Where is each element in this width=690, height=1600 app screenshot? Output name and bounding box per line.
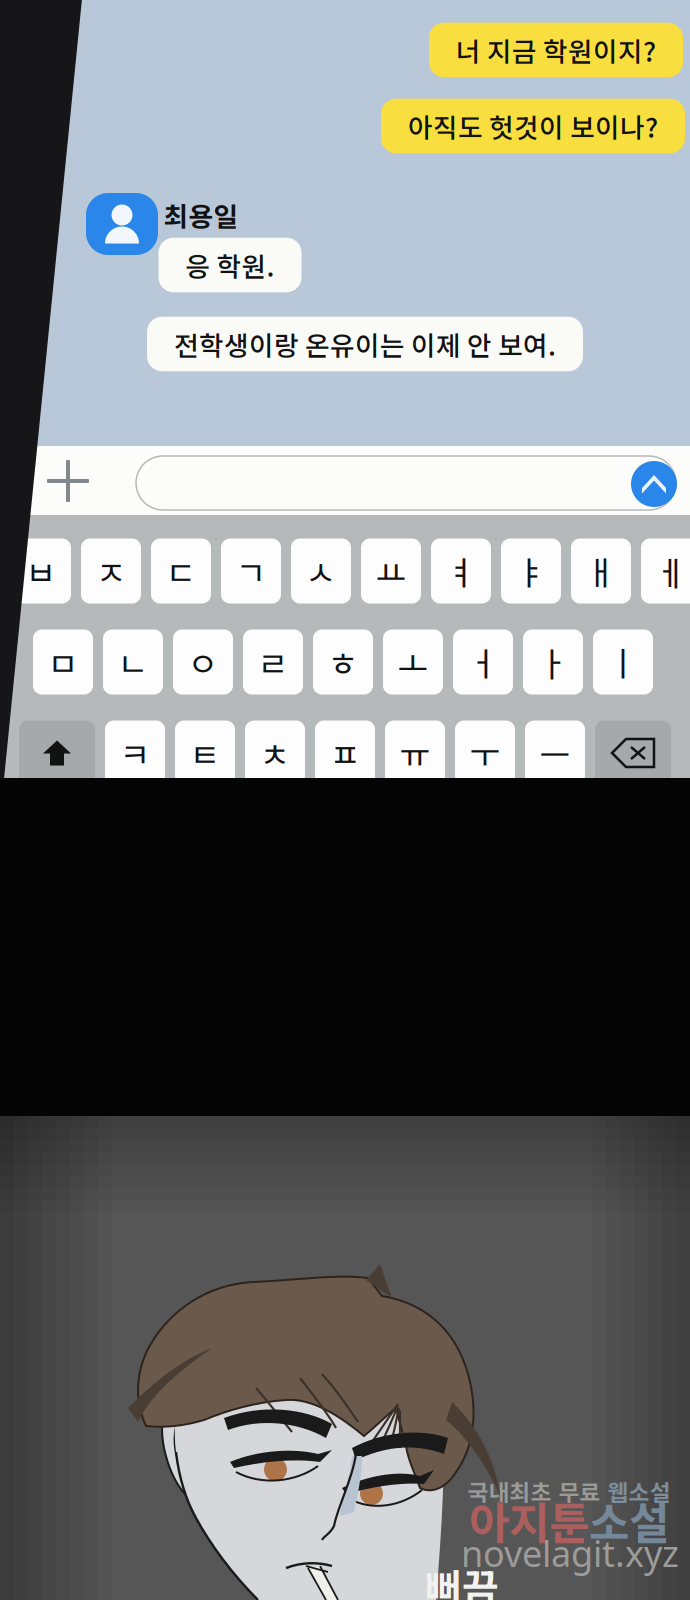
button[interactable]: ㅏ — [523, 629, 583, 694]
staticText: 무료 — [558, 1475, 600, 1507]
staticText: 아직도 헛것이 보이나? — [408, 107, 658, 145]
staticText: ㅊ — [259, 729, 290, 777]
staticText: ㅁ — [47, 638, 78, 686]
staticText: 국내최초 — [467, 1475, 551, 1507]
button[interactable]: Delete — [595, 720, 671, 785]
staticText: ㅌ — [189, 729, 220, 777]
staticText: ㅂ — [25, 547, 56, 595]
button[interactable]: ㅑ — [501, 538, 561, 603]
staticText: ㅈ — [95, 547, 126, 595]
button[interactable]: ㅗ — [383, 629, 443, 694]
staticText: ㅐ — [585, 547, 616, 595]
button[interactable]: ㄴ — [103, 629, 163, 694]
staticText: 뻐끔 — [425, 1557, 499, 1600]
button[interactable]: ㅍ — [315, 720, 375, 785]
button[interactable]: Send — [0, 0, 690, 779]
staticText: ㅛ — [375, 547, 406, 595]
staticText: ㄴ — [117, 638, 148, 686]
staticText: ㅗ — [397, 638, 428, 686]
staticText: 아지툰 — [469, 1488, 589, 1552]
button[interactable]: ㅇ — [173, 629, 233, 694]
button[interactable]: ㅠ — [385, 720, 445, 785]
button[interactable]: ㅁ — [33, 629, 93, 694]
button[interactable]: ㅜ — [455, 720, 515, 785]
staticText: ㄷ — [165, 547, 196, 595]
button[interactable]: ㅂ — [11, 538, 71, 603]
button[interactable]: ㅡ — [525, 720, 585, 785]
staticText: ㅋ — [119, 729, 150, 777]
staticText: ㄱ — [235, 547, 266, 595]
button[interactable]: Shift — [19, 720, 95, 785]
button[interactable]: ㅈ — [81, 538, 141, 603]
staticText: ㅏ — [537, 638, 568, 686]
staticText: ㅜ — [469, 729, 500, 777]
staticText: ㅑ — [515, 547, 546, 595]
button[interactable]: ㅅ — [291, 538, 351, 603]
button[interactable]: ㅛ — [361, 538, 421, 603]
button[interactable]: Add attachment — [0, 0, 690, 779]
staticText: ㅇ — [187, 638, 218, 686]
staticText: 최용일 — [163, 196, 238, 234]
staticText: 너 지금 학원이지? — [456, 31, 656, 69]
staticText: 전학생이랑 온유이는 이제 안 보여. — [174, 325, 556, 363]
staticText: ㅅ — [305, 547, 336, 595]
button[interactable]: ㄹ — [243, 629, 303, 694]
staticText: ㅡ — [539, 729, 570, 777]
staticText: ㅕ — [445, 547, 476, 595]
staticText: ㅍ — [329, 729, 360, 777]
button[interactable]: ㅌ — [175, 720, 235, 785]
button[interactable]: ㅓ — [453, 629, 513, 694]
button[interactable]: ㄱ — [221, 538, 281, 603]
staticText: 웹소설 — [607, 1475, 670, 1507]
button[interactable]: ㅕ — [431, 538, 491, 603]
staticText: ㅣ — [607, 638, 638, 686]
staticText: 소설 — [589, 1488, 669, 1552]
staticText: ㅎ — [327, 638, 358, 686]
staticText: novelagit.xyz — [461, 1529, 679, 1577]
staticText: ㅔ — [655, 547, 686, 595]
button[interactable]: ㅊ — [245, 720, 305, 785]
button[interactable]: ㄷ — [151, 538, 211, 603]
button[interactable]: ㅎ — [313, 629, 373, 694]
button[interactable]: ㅣ — [593, 629, 653, 694]
staticText: 응 학원. — [185, 246, 274, 284]
button[interactable]: ㅋ — [105, 720, 165, 785]
button[interactable]: ㅐ — [571, 538, 631, 603]
staticText: ㅠ — [399, 729, 430, 777]
button[interactable]: ㅔ — [641, 538, 690, 603]
staticText: ㄹ — [257, 638, 288, 686]
staticText: ㅓ — [467, 638, 498, 686]
